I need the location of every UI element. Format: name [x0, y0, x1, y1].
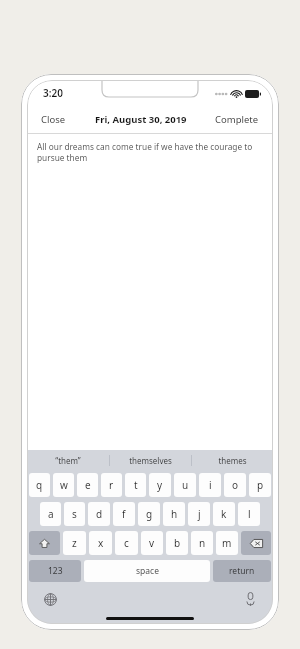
- button[interactable]: space: [84, 560, 210, 582]
- button[interactable]: d: [88, 502, 110, 526]
- button[interactable]: b: [166, 531, 188, 555]
- staticText: Fri, August 30, 2019: [95, 113, 187, 126]
- staticText: m: [222, 536, 232, 550]
- button[interactable]: u: [174, 473, 196, 497]
- staticText: i: [209, 478, 212, 492]
- staticText: All our dreams can come true if we have …: [37, 141, 263, 163]
- staticText: w: [60, 478, 68, 492]
- button[interactable]: Dictation: [240, 589, 260, 609]
- staticText: b: [174, 536, 181, 550]
- button[interactable]: l: [238, 502, 260, 526]
- staticText: e: [85, 478, 91, 492]
- button[interactable]: “them”: [27, 450, 109, 470]
- button[interactable]: x: [89, 531, 112, 555]
- button[interactable]: Shift: [29, 531, 60, 555]
- button[interactable]: e: [77, 473, 98, 497]
- staticText: r: [109, 478, 114, 492]
- button[interactable]: v: [141, 531, 163, 555]
- button[interactable]: n: [191, 531, 213, 555]
- button[interactable]: m: [216, 531, 238, 555]
- button[interactable]: i: [199, 473, 221, 497]
- staticText: return: [229, 565, 255, 577]
- button[interactable]: Backspace: [241, 531, 271, 555]
- button[interactable]: Complete: [213, 110, 261, 129]
- button[interactable]: g: [138, 502, 160, 526]
- staticText: x: [98, 536, 104, 550]
- button[interactable]: 123: [29, 560, 81, 582]
- button[interactable]: themes: [192, 450, 273, 470]
- staticText: space: [136, 565, 159, 577]
- staticText: Complete: [215, 113, 259, 126]
- staticText: g: [146, 507, 153, 521]
- button[interactable]: p: [249, 473, 271, 497]
- button[interactable]: o: [224, 473, 246, 497]
- staticText: h: [171, 507, 178, 521]
- staticText: j: [198, 507, 201, 521]
- staticText: n: [199, 536, 206, 550]
- staticText: y: [157, 478, 163, 492]
- staticText: o: [232, 478, 239, 492]
- staticText: p: [257, 478, 264, 492]
- button[interactable]: t: [125, 473, 146, 497]
- button[interactable]: c: [115, 531, 138, 555]
- staticText: 3:20: [43, 86, 63, 100]
- staticText: v: [149, 536, 155, 550]
- button[interactable]: All our dreams can come true if we have …: [37, 141, 263, 450]
- staticText: Close: [41, 113, 66, 126]
- staticText: k: [221, 507, 227, 521]
- staticText: c: [124, 536, 129, 550]
- button[interactable]: themselves: [110, 450, 191, 470]
- button[interactable]: y: [149, 473, 171, 497]
- staticText: z: [72, 536, 77, 550]
- button[interactable]: a: [40, 502, 61, 526]
- staticText: t: [134, 478, 138, 492]
- button[interactable]: Change keyboard: [40, 589, 60, 609]
- button[interactable]: return: [213, 560, 271, 582]
- button[interactable]: h: [163, 502, 185, 526]
- button[interactable]: k: [213, 502, 235, 526]
- staticText: 123: [48, 565, 63, 577]
- button[interactable]: s: [64, 502, 85, 526]
- staticText: s: [72, 507, 77, 521]
- button[interactable]: f: [113, 502, 135, 526]
- staticText: themes: [218, 455, 247, 466]
- staticText: u: [182, 478, 189, 492]
- staticText: “them”: [55, 455, 81, 466]
- button[interactable]: j: [188, 502, 210, 526]
- button[interactable]: z: [63, 531, 86, 555]
- staticText: d: [96, 507, 103, 521]
- staticText: themselves: [129, 455, 172, 466]
- button[interactable]: q: [29, 473, 50, 497]
- staticText: f: [122, 507, 126, 521]
- staticText: a: [48, 507, 54, 521]
- button[interactable]: w: [53, 473, 74, 497]
- button[interactable]: r: [101, 473, 122, 497]
- staticText: q: [36, 478, 43, 492]
- button[interactable]: Close: [39, 110, 68, 129]
- staticText: l: [248, 507, 251, 521]
